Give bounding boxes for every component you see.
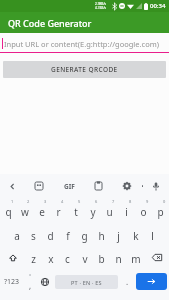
- staticText: o: [140, 205, 147, 219]
- staticText: 2: [27, 199, 30, 204]
- staticText: m: [131, 252, 141, 266]
- staticText: 6: [95, 199, 98, 204]
- staticText: QR Code Generator: [8, 17, 92, 29]
- staticText: °: [29, 273, 32, 280]
- button[interactable]: b: [93, 246, 110, 269]
- staticText: 2.98B/s: [95, 2, 107, 6]
- staticText: 1: [11, 199, 14, 204]
- button[interactable]: 4: [50, 199, 67, 223]
- button[interactable]: Enter: [136, 273, 167, 290]
- button[interactable]: Backspace: [144, 246, 169, 269]
- button[interactable]: ?123: [0, 269, 23, 294]
- button[interactable]: a: [8, 223, 25, 246]
- staticText: 4: [61, 199, 64, 204]
- staticText: PT · EN · ES: [71, 279, 102, 286]
- staticText: w: [21, 205, 29, 219]
- button[interactable]: Shift: [0, 246, 25, 269]
- button[interactable]: 3: [33, 199, 50, 223]
- staticText: GENERATE QRCODE: [51, 65, 118, 74]
- staticText: f: [66, 229, 70, 243]
- button[interactable]: Expand toolbar: [0, 174, 24, 198]
- button[interactable]: m: [127, 246, 144, 269]
- button[interactable]: Voice input: [143, 174, 169, 198]
- staticText: h: [98, 229, 105, 243]
- staticText: ?123: [4, 277, 20, 287]
- button[interactable]: °: [23, 269, 37, 294]
- button[interactable]: Change language: [37, 269, 53, 294]
- button[interactable]: c: [59, 246, 76, 269]
- staticText: t: [74, 205, 78, 219]
- button[interactable]: 9: [135, 199, 152, 223]
- staticText: j: [117, 229, 120, 243]
- button[interactable]: Stickers: [24, 174, 54, 198]
- staticText: q: [5, 205, 12, 219]
- button[interactable]: 7: [101, 199, 118, 223]
- staticText: 4.74B/s: [95, 6, 107, 10]
- staticText: i: [125, 205, 128, 219]
- staticText: p: [157, 205, 164, 219]
- staticText: 0: [163, 199, 166, 204]
- button[interactable]: f: [59, 223, 76, 246]
- button[interactable]: g: [76, 223, 93, 246]
- staticText: n: [115, 252, 122, 266]
- button[interactable]: GIF: [54, 174, 84, 198]
- staticText: z: [31, 252, 36, 266]
- staticText: b: [98, 252, 105, 266]
- staticText: r: [56, 205, 61, 219]
- staticText: 7: [112, 199, 115, 204]
- button[interactable]: PT · EN · ES: [55, 275, 118, 289]
- staticText: 8: [129, 199, 132, 204]
- staticText: g: [81, 229, 88, 243]
- staticText: s: [31, 229, 36, 243]
- staticText: l: [151, 229, 154, 243]
- button[interactable]: GENERATE QRCODE: [3, 61, 166, 78]
- staticText: 3: [44, 199, 47, 204]
- button[interactable]: Settings: [112, 174, 142, 198]
- button[interactable]: 1: [0, 199, 16, 223]
- button[interactable]: l: [144, 223, 161, 246]
- staticText: 00:34: [150, 2, 166, 10]
- button[interactable]: n: [110, 246, 127, 269]
- staticText: a: [14, 229, 20, 243]
- staticText: k: [133, 229, 139, 243]
- button[interactable]: d: [42, 223, 59, 246]
- staticText: x: [48, 252, 54, 266]
- staticText: ,: [29, 280, 32, 291]
- button[interactable]: s: [25, 223, 42, 246]
- button[interactable]: Clipboard: [84, 174, 112, 198]
- button[interactable]: x: [42, 246, 59, 269]
- button[interactable]: z: [25, 246, 42, 269]
- staticText: u: [106, 205, 113, 219]
- button[interactable]: h: [93, 223, 110, 246]
- staticText: c: [65, 252, 70, 266]
- button[interactable]: v: [76, 246, 93, 269]
- staticText: GIF: [64, 182, 75, 191]
- button[interactable]: j: [110, 223, 127, 246]
- staticText: y: [90, 205, 96, 219]
- button[interactable]: 0: [152, 199, 169, 223]
- button[interactable]: 5: [67, 199, 84, 223]
- button[interactable]: 6: [84, 199, 101, 223]
- staticText: 5: [78, 199, 81, 204]
- button[interactable]: 8: [118, 199, 135, 223]
- staticText: v: [82, 252, 88, 266]
- button[interactable]: 2: [16, 199, 33, 223]
- button[interactable]: Input URL or content(E.g:http://google.c…: [0, 33, 169, 53]
- staticText: Input URL or content(E.g:http://google.c…: [4, 39, 159, 49]
- staticText: d: [47, 229, 54, 243]
- button[interactable]: k: [127, 223, 144, 246]
- staticText: 9: [146, 199, 149, 204]
- staticText: e: [39, 205, 45, 219]
- button[interactable]: More options: [142, 174, 143, 198]
- button[interactable]: .: [120, 269, 134, 294]
- staticText: .: [126, 276, 129, 287]
